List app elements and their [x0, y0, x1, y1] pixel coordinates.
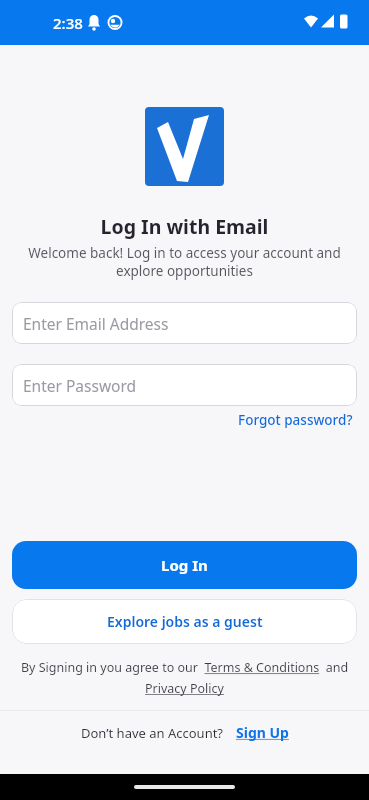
button[interactable]: Sign Up: [236, 723, 289, 742]
button[interactable]: Forgot password?: [238, 411, 353, 429]
staticText: 2:38: [53, 13, 83, 33]
staticText: Enter Email Address: [23, 313, 169, 334]
staticText: Log In: [161, 555, 208, 575]
staticText: Don’t have an Account?: [81, 724, 224, 742]
button[interactable]: Enter Password: [12, 364, 357, 406]
staticText: Log In with Email: [0, 213, 369, 240]
button[interactable]: Log In: [12, 541, 357, 589]
button[interactable]: Explore jobs as a guest: [12, 599, 357, 644]
button[interactable]: Enter Email Address: [12, 302, 357, 344]
staticText: Explore jobs as a guest: [107, 612, 263, 631]
staticText: Welcome back! Log in to access your acco…: [0, 244, 369, 280]
button[interactable]: By Signing in you agree to our Terms & C…: [20, 659, 349, 697]
staticText: Enter Password: [23, 375, 137, 396]
